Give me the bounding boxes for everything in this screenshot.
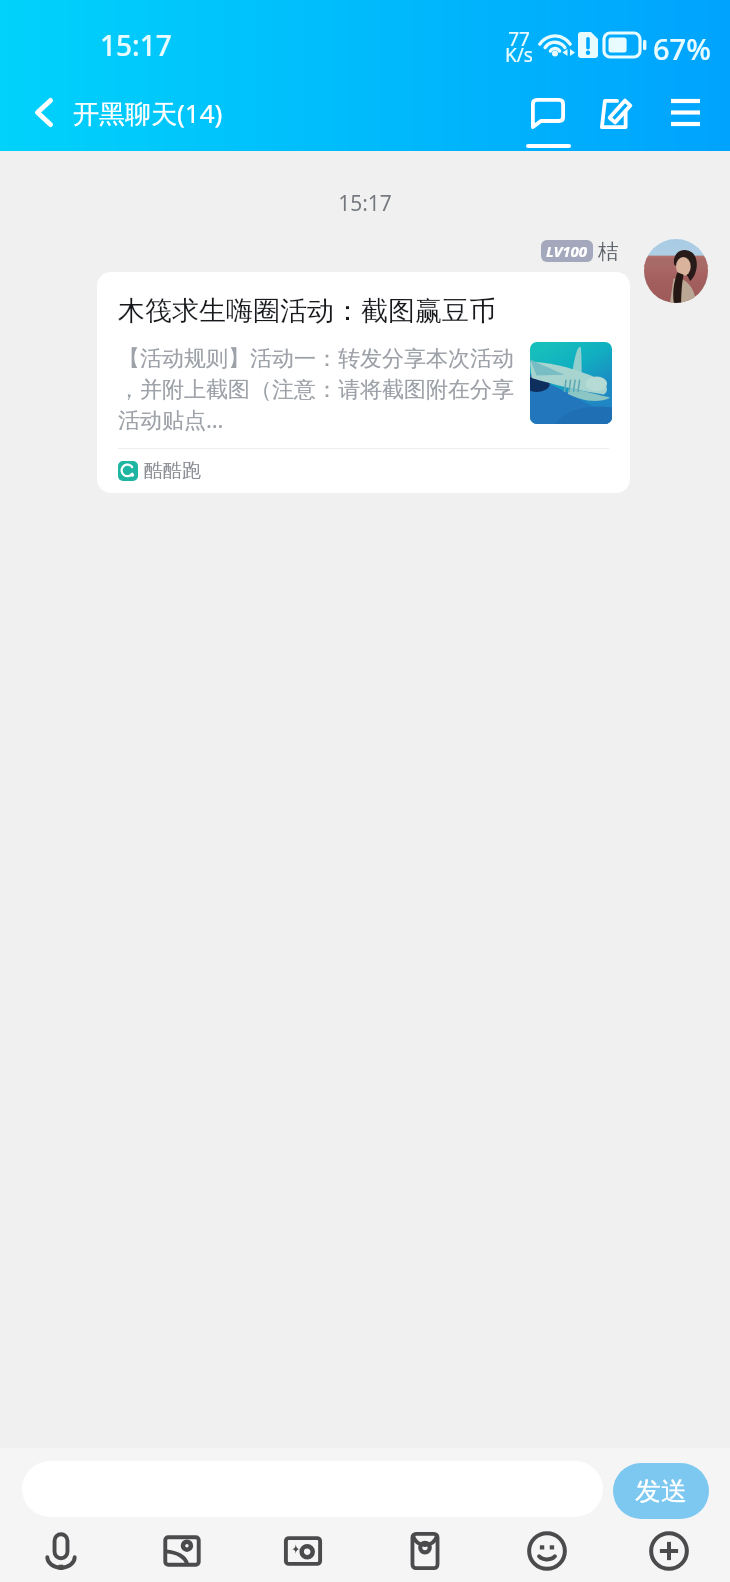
button[interactable]: More <box>608 1520 730 1582</box>
button[interactable]: Back <box>12 92 74 151</box>
button[interactable]: Emoji <box>486 1520 608 1582</box>
staticText: 酷酷跑 <box>144 459 201 483</box>
button[interactable]: Voice <box>0 1520 121 1582</box>
staticText: 【活动规则】活动一：转发分享本次活动 ，并附上截图（注意：请将截图附在分享 活动… <box>118 345 538 434</box>
button[interactable]: Red packet <box>364 1520 486 1582</box>
button[interactable]: Compose <box>581 92 651 151</box>
staticText: 发送 <box>635 1475 687 1508</box>
staticText: LV100 <box>546 241 588 261</box>
staticText: 77 <box>504 26 534 52</box>
staticText: K/s <box>504 42 534 68</box>
button[interactable]: Messages <box>512 92 584 151</box>
staticText: 15:17 <box>0 189 730 218</box>
staticText: 桔 <box>598 239 619 265</box>
button[interactable]: 木筏求生嗨圈活动：截图赢豆币 <box>97 272 630 493</box>
button[interactable]: 发送 <box>613 1463 709 1519</box>
button[interactable]: Photo <box>121 1520 242 1582</box>
staticText: 67% <box>653 29 711 68</box>
button[interactable]: Sticker <box>242 1520 364 1582</box>
staticText: 15:17 <box>100 26 172 64</box>
staticText: 木筏求生嗨圈活动：截图赢豆币 <box>118 294 496 328</box>
button[interactable]: Menu <box>651 92 723 151</box>
staticText: 开黑聊天(14) <box>73 95 223 131</box>
